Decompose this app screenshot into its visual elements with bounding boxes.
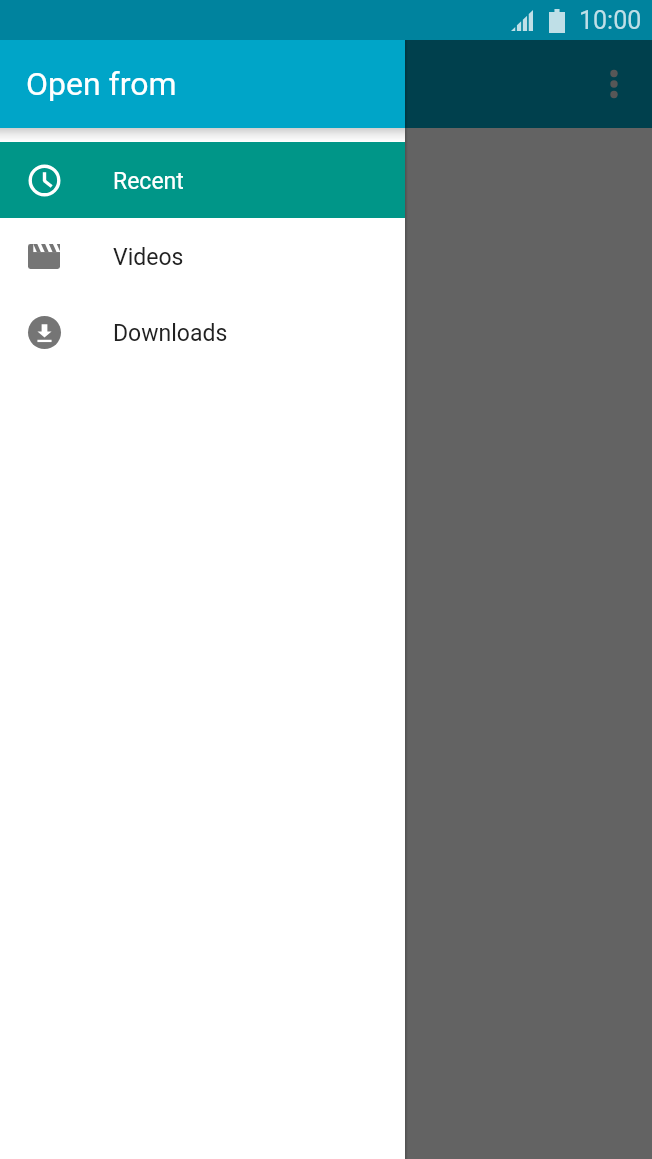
button[interactable]: Videos [0, 218, 405, 294]
staticText: Open from [26, 65, 177, 103]
button[interactable]: Close navigation drawer [0, 0, 652, 1159]
staticText: Open from [26, 65, 177, 103]
button[interactable]: Downloads [0, 294, 405, 370]
staticText: Downloads [113, 320, 228, 347]
staticText: Recent [113, 168, 184, 195]
staticText: Videos [113, 244, 184, 271]
button[interactable]: Recent [0, 142, 405, 218]
button[interactable]: More options [590, 60, 638, 108]
staticText: 10:00 [579, 6, 642, 35]
